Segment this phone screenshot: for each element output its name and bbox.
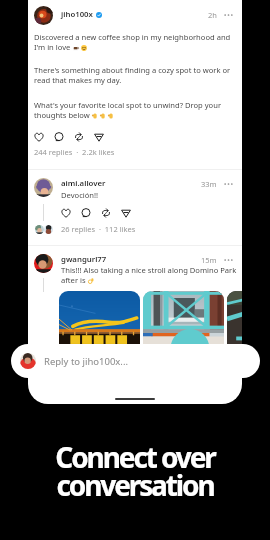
staticText: after is — [61, 275, 88, 285]
staticText: This!!! Also taking a nice stroll along … — [61, 265, 237, 275]
staticText: read that makes my day. — [34, 75, 122, 85]
button[interactable]: Like — [34, 130, 54, 143]
staticText: Connect over conversation — [55, 438, 215, 504]
staticText: There's something about finding a cozy s… — [34, 65, 231, 75]
button[interactable]: Repost — [74, 130, 94, 143]
button[interactable]: Repost — [101, 206, 121, 219]
button[interactable]: Reply — [54, 130, 74, 143]
button[interactable]: More options — [224, 255, 233, 265]
button[interactable]: Reply — [81, 206, 101, 219]
staticText: 15m — [201, 255, 217, 265]
button[interactable]: Like — [61, 206, 81, 219]
staticText: 244 replies · 2.2k likes — [34, 147, 115, 157]
staticText: thoughts below — [34, 110, 92, 120]
staticText: jiho100x — [61, 9, 93, 20]
staticText: Reply to jiho100x... — [44, 355, 129, 368]
staticText: gwangurl77 — [61, 254, 107, 265]
button[interactable]: Reply to jiho100x... — [11, 344, 260, 378]
staticText: Discovered a new coffee shop in my neigh… — [34, 32, 231, 42]
button[interactable]: Share — [94, 130, 114, 143]
staticText: Devoción!! — [61, 190, 99, 200]
staticText: 26 replies · 112 likes — [61, 224, 136, 234]
button[interactable]: Share — [121, 206, 141, 219]
staticText: 33m — [201, 179, 217, 189]
staticText: 2h — [208, 10, 217, 20]
staticText: I'm in love — [34, 42, 73, 52]
button[interactable]: More options — [224, 10, 233, 20]
staticText: What's your favorite local spot to unwin… — [34, 100, 222, 110]
staticText: aimi.allover — [61, 178, 106, 189]
button[interactable]: More options — [224, 179, 233, 189]
